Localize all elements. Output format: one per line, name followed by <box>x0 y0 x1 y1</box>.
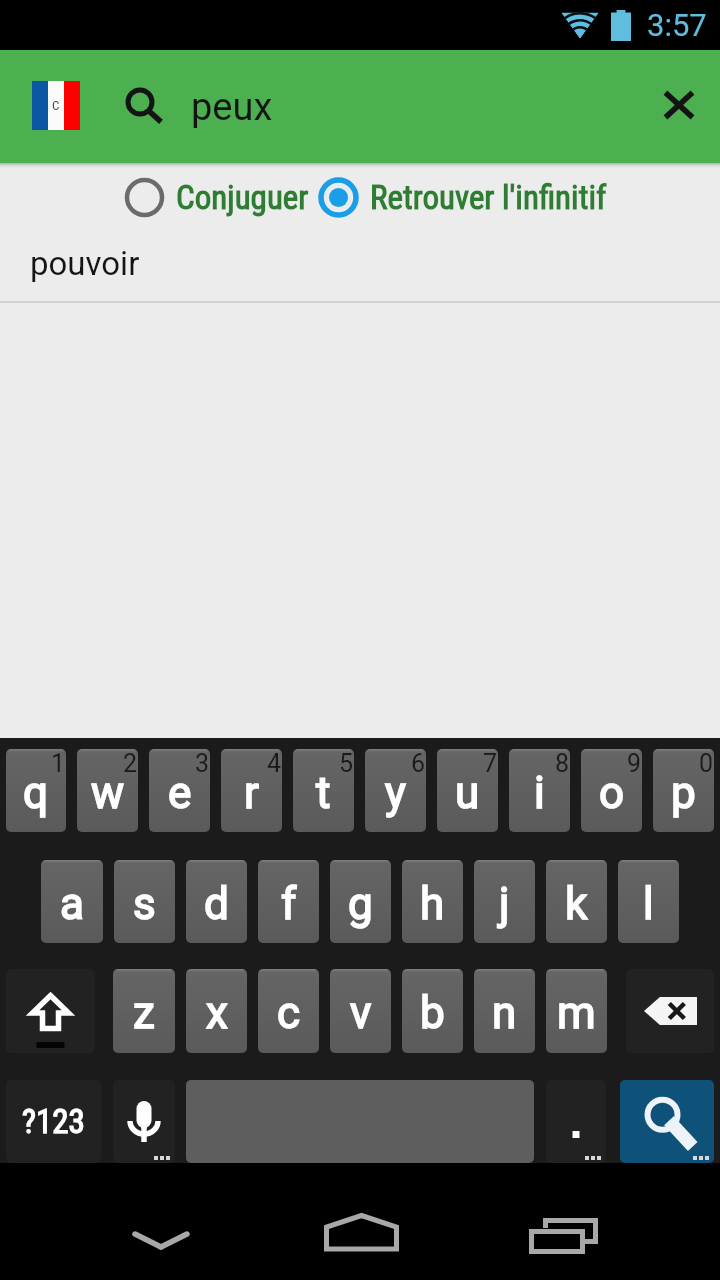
staticText: 1 <box>51 749 66 778</box>
button[interactable]: v <box>330 969 391 1053</box>
staticText: h <box>420 878 445 930</box>
staticText: f <box>281 878 297 930</box>
staticText: 9 <box>627 749 642 778</box>
button[interactable]: h <box>402 860 463 943</box>
staticText: l <box>643 878 654 930</box>
staticText: 5 <box>339 749 354 778</box>
button[interactable]: o <box>581 749 642 832</box>
staticText: 2 <box>123 749 138 778</box>
staticText: n <box>492 987 517 1039</box>
staticText: 4 <box>267 749 282 778</box>
staticText: Retrouver l'infinitif <box>370 178 607 217</box>
button[interactable]: e <box>149 749 210 832</box>
staticText: s <box>133 878 156 930</box>
button[interactable]: k <box>546 860 607 943</box>
staticText: k <box>565 878 588 930</box>
button[interactable]: x <box>186 969 247 1053</box>
button[interactable]: Backspace <box>626 969 714 1053</box>
button[interactable]: z <box>113 969 175 1053</box>
staticText: w <box>91 767 125 819</box>
staticText: peux <box>191 85 273 130</box>
staticText: y <box>385 767 406 819</box>
staticText: 8 <box>555 749 570 778</box>
button[interactable]: Recents <box>512 1211 614 1261</box>
button[interactable]: Language <box>20 69 92 141</box>
staticText: x <box>206 987 228 1039</box>
button[interactable]: f <box>258 860 319 943</box>
staticText: r <box>244 767 259 819</box>
button[interactable]: Search <box>620 1080 714 1163</box>
staticText: j <box>499 878 510 930</box>
staticText: C <box>52 98 60 113</box>
button[interactable]: c <box>258 969 319 1053</box>
staticText: e <box>168 767 192 819</box>
staticText: i <box>534 767 545 819</box>
button[interactable]: Retrouver l'infinitif <box>319 163 607 231</box>
button[interactable]: Symbols <box>6 1080 101 1163</box>
button[interactable]: Voice input <box>113 1080 175 1163</box>
button[interactable]: Home <box>310 1203 412 1253</box>
staticText: 3 <box>195 749 210 778</box>
button[interactable]: b <box>402 969 463 1053</box>
staticText: o <box>599 767 625 819</box>
staticText: q <box>23 767 49 819</box>
button[interactable]: Shift <box>6 969 95 1053</box>
staticText: d <box>204 878 229 930</box>
staticText: ?123 <box>22 1102 85 1141</box>
button[interactable]: w <box>77 749 138 832</box>
button[interactable]: i <box>509 749 570 832</box>
button[interactable]: q <box>6 749 66 832</box>
button[interactable]: y <box>365 749 426 832</box>
staticText: 0 <box>699 749 714 778</box>
staticText: p <box>671 767 696 819</box>
button[interactable]: p <box>653 749 714 832</box>
button[interactable]: g <box>330 860 391 943</box>
button[interactable]: l <box>618 860 679 943</box>
button[interactable]: Period <box>546 1080 606 1163</box>
staticText: m <box>557 987 596 1039</box>
staticText: 3:57 <box>647 7 707 43</box>
button[interactable]: s <box>114 860 175 943</box>
staticText: a <box>60 878 84 930</box>
button[interactable]: Conjuguer <box>125 163 309 231</box>
staticText: v <box>350 987 372 1039</box>
button[interactable]: pouvoir <box>0 231 720 301</box>
button[interactable]: Back <box>112 1211 210 1251</box>
button[interactable]: t <box>293 749 354 832</box>
staticText: b <box>420 987 445 1039</box>
staticText: 6 <box>411 749 426 778</box>
button[interactable]: r <box>221 749 282 832</box>
staticText: Conjuguer <box>176 178 309 217</box>
button[interactable]: Clear <box>644 70 714 140</box>
button[interactable]: u <box>437 749 498 832</box>
staticText: z <box>133 987 155 1039</box>
staticText: u <box>455 767 480 819</box>
button[interactable]: d <box>186 860 247 943</box>
button[interactable]: n <box>474 969 535 1053</box>
staticText: t <box>316 767 331 819</box>
staticText: 7 <box>483 749 498 778</box>
staticText: pouvoir <box>30 244 140 283</box>
staticText: g <box>348 878 373 930</box>
button[interactable]: a <box>41 860 103 943</box>
staticText: c <box>277 987 301 1039</box>
button[interactable]: m <box>546 969 607 1053</box>
button[interactable]: j <box>474 860 535 943</box>
